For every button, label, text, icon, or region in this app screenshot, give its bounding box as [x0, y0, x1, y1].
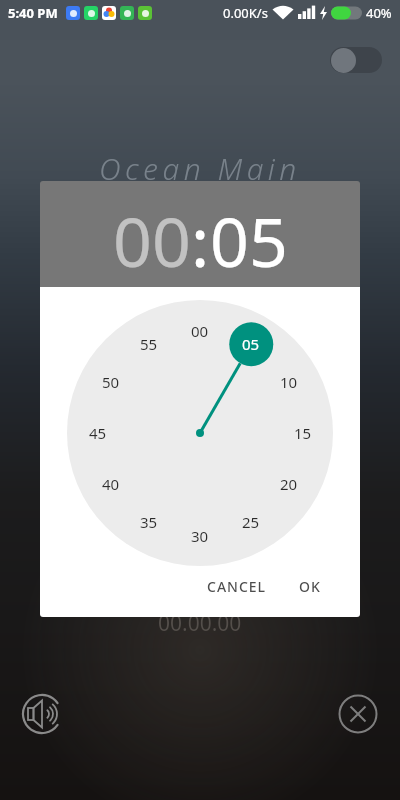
staticText: 35: [140, 512, 158, 532]
staticText: 30: [191, 526, 209, 546]
staticText: Ocean Main: [99, 148, 301, 189]
staticText: 0.00K/s: [223, 4, 268, 22]
staticText: 00: [191, 321, 209, 341]
button[interactable]: OK: [287, 571, 333, 602]
button[interactable]: 55: [127, 333, 171, 355]
button[interactable]: 20: [267, 473, 311, 495]
staticText: 05: [242, 334, 260, 354]
staticText: 40%: [366, 4, 392, 22]
button[interactable]: 40: [89, 473, 133, 495]
staticText: 5:40 PM: [8, 4, 58, 22]
button[interactable]: 10: [267, 371, 311, 393]
staticText: 40: [102, 474, 120, 494]
staticText: 50: [102, 372, 120, 392]
button[interactable]: CANCEL: [195, 571, 279, 602]
staticText: OK: [299, 577, 321, 596]
staticText: 05: [210, 194, 288, 287]
button[interactable]: [20, 692, 64, 736]
staticText: CANCEL: [207, 577, 267, 596]
staticText: 45: [89, 423, 107, 443]
staticText: 10: [280, 372, 298, 392]
staticText: 00: [113, 194, 191, 287]
staticText: 00.00.00: [158, 609, 242, 638]
button[interactable]: [330, 47, 382, 73]
staticText: 25: [242, 512, 260, 532]
button[interactable]: [336, 692, 380, 736]
staticText: 20: [280, 474, 298, 494]
button[interactable]: 45: [76, 422, 120, 444]
staticText: 15: [294, 423, 312, 443]
button[interactable]: 00: [178, 320, 222, 342]
button[interactable]: 25: [229, 511, 273, 533]
button[interactable]: 30: [178, 525, 222, 547]
staticText: :: [191, 194, 210, 287]
button[interactable]: 05: [229, 333, 273, 355]
button[interactable]: 35: [127, 511, 171, 533]
button[interactable]: 15: [281, 422, 325, 444]
staticText: 55: [140, 334, 158, 354]
button[interactable]: 50: [89, 371, 133, 393]
